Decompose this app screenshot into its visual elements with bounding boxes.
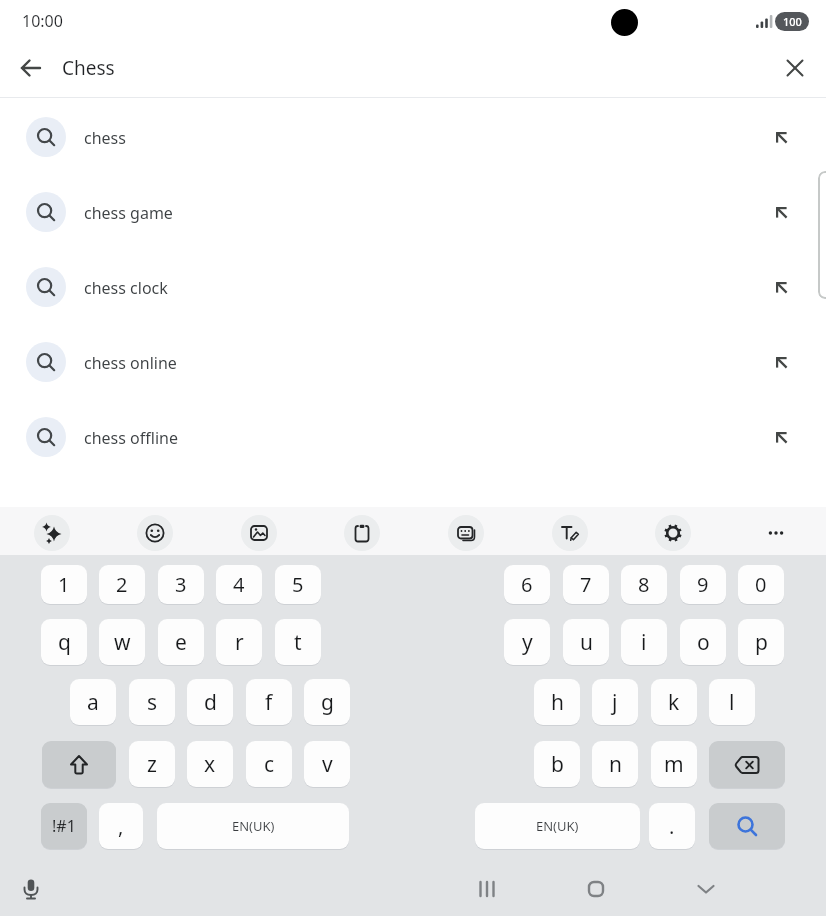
button[interactable]: m <box>651 741 697 787</box>
staticText: chess online <box>84 352 177 374</box>
staticText: EN(UK) <box>536 817 579 835</box>
button[interactable] <box>466 868 508 910</box>
button[interactable]: s <box>129 679 175 725</box>
button[interactable]: 3 <box>158 565 204 604</box>
staticText: o <box>697 628 710 657</box>
button[interactable]: p <box>738 619 784 665</box>
staticText: j <box>612 688 618 717</box>
button[interactable] <box>772 45 818 91</box>
staticText: 3 <box>175 571 187 598</box>
staticText: 7 <box>580 571 592 598</box>
button[interactable] <box>344 515 380 551</box>
button[interactable]: u <box>563 619 609 665</box>
button[interactable]: chess clock <box>0 250 826 325</box>
staticText: 6 <box>521 571 533 598</box>
button[interactable]: 7 <box>563 565 609 604</box>
button[interactable]: x <box>187 741 233 787</box>
button[interactable]: , <box>99 803 143 849</box>
staticText: v <box>322 750 333 779</box>
staticText: f <box>265 688 273 717</box>
staticText: c <box>264 750 275 779</box>
button[interactable]: EN(UK) <box>157 803 349 849</box>
button[interactable]: y <box>504 619 550 665</box>
staticText: g <box>321 688 334 717</box>
button[interactable] <box>448 515 484 551</box>
button[interactable] <box>10 868 52 910</box>
staticText: 9 <box>697 571 709 598</box>
button[interactable]: 9 <box>680 565 726 604</box>
staticText: z <box>147 750 157 779</box>
button[interactable]: i <box>621 619 667 665</box>
button[interactable]: chess <box>0 100 826 175</box>
staticText: b <box>551 750 564 779</box>
button[interactable]: t <box>275 619 321 665</box>
button[interactable]: h <box>534 679 580 725</box>
staticText: n <box>609 750 622 779</box>
button[interactable]: l <box>709 679 755 725</box>
staticText: chess clock <box>84 277 168 299</box>
button[interactable] <box>552 515 588 551</box>
staticText: p <box>755 628 768 657</box>
button[interactable]: chess online <box>0 325 826 400</box>
staticText: x <box>204 750 216 779</box>
button[interactable] <box>655 515 691 551</box>
staticText: h <box>551 688 564 717</box>
staticText: d <box>204 688 217 717</box>
button[interactable]: n <box>592 741 638 787</box>
button[interactable]: 6 <box>504 565 550 604</box>
staticText: m <box>664 750 684 779</box>
button[interactable] <box>42 741 116 788</box>
button[interactable] <box>34 515 70 551</box>
button[interactable]: 5 <box>275 565 321 604</box>
staticText: !#1 <box>52 815 76 837</box>
button[interactable]: w <box>99 619 145 665</box>
button[interactable]: j <box>592 679 638 725</box>
staticText: a <box>87 688 99 717</box>
button[interactable]: !#1 <box>41 803 87 849</box>
button[interactable] <box>709 741 785 788</box>
staticText: 10:00 <box>22 10 63 32</box>
staticText: chess game <box>84 202 173 224</box>
button[interactable]: 2 <box>99 565 145 604</box>
staticText: i <box>641 628 647 657</box>
staticText: r <box>235 628 244 657</box>
button[interactable]: v <box>304 741 350 787</box>
button[interactable]: chess game <box>0 175 826 250</box>
staticText: w <box>114 628 131 657</box>
button[interactable]: a <box>70 679 116 725</box>
staticText: 100 <box>783 14 802 29</box>
button[interactable]: k <box>651 679 697 725</box>
staticText: , <box>118 813 124 840</box>
button[interactable]: chess offline <box>0 400 826 475</box>
button[interactable]: q <box>41 619 87 665</box>
button[interactable]: . <box>649 803 695 849</box>
staticText: . <box>669 813 675 840</box>
button[interactable] <box>8 45 54 91</box>
button[interactable] <box>685 868 727 910</box>
button[interactable]: f <box>246 679 292 725</box>
staticText: 1 <box>58 571 70 598</box>
button[interactable]: r <box>216 619 262 665</box>
button[interactable]: 8 <box>621 565 667 604</box>
button[interactable]: 0 <box>738 565 784 604</box>
staticText: 8 <box>638 571 650 598</box>
button[interactable]: EN(UK) <box>475 803 640 849</box>
button[interactable] <box>575 868 617 910</box>
button[interactable]: g <box>304 679 350 725</box>
button[interactable] <box>709 803 785 849</box>
staticText: Chess <box>62 55 115 81</box>
button[interactable]: c <box>246 741 292 787</box>
staticText: 0 <box>755 571 767 598</box>
staticText: EN(UK) <box>232 817 275 835</box>
button[interactable] <box>241 515 277 551</box>
button[interactable]: e <box>158 619 204 665</box>
button[interactable]: d <box>187 679 233 725</box>
button[interactable] <box>137 515 173 551</box>
button[interactable]: 4 <box>216 565 262 604</box>
button[interactable]: b <box>534 741 580 787</box>
button[interactable] <box>758 515 794 551</box>
staticText: t <box>294 628 302 657</box>
button[interactable]: o <box>680 619 726 665</box>
button[interactable]: 1 <box>41 565 87 604</box>
button[interactable]: z <box>129 741 175 787</box>
